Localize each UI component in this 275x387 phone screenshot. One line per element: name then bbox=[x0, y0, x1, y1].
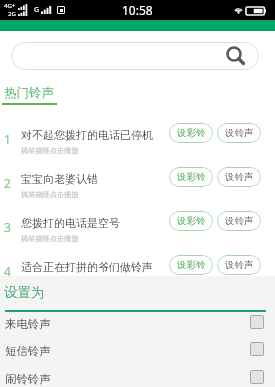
staticText: 搞笑搞怪点击播放 bbox=[21, 278, 79, 287]
staticText: 4G+ bbox=[4, 2, 16, 10]
button[interactable]: 设彩铃 bbox=[169, 255, 213, 275]
staticText: 适合正在打拼的爷们做铃声 bbox=[21, 260, 153, 274]
staticText: 热门铃声 bbox=[4, 85, 54, 101]
button[interactable]: 设铃声 bbox=[217, 211, 261, 231]
button[interactable]: 设铃声 bbox=[217, 167, 261, 187]
button[interactable]: 设彩铃 bbox=[169, 211, 213, 231]
staticText: 宝宝向老婆认错 bbox=[21, 172, 98, 186]
button[interactable]: 3 bbox=[0, 201, 275, 245]
staticText: G bbox=[34, 5, 40, 15]
button[interactable]: 设铃声 bbox=[217, 123, 261, 143]
button[interactable]: 2 bbox=[0, 157, 275, 201]
staticText: 设彩铃 bbox=[177, 127, 206, 139]
staticText: 设铃声 bbox=[225, 259, 254, 271]
staticText: 您拨打的电话是空号 bbox=[21, 216, 120, 230]
staticText: 对不起您拨打的电话已停机 bbox=[21, 128, 153, 142]
staticText: 设铃声 bbox=[225, 127, 254, 139]
staticText: 3 bbox=[4, 219, 11, 235]
button[interactable]: 设铃声 bbox=[217, 255, 261, 275]
staticText: 来电铃声 bbox=[5, 317, 51, 331]
button[interactable]: Search ringtones bbox=[11, 42, 259, 70]
staticText: 2G bbox=[8, 10, 16, 18]
button[interactable]: 闹铃铃声 bbox=[0, 365, 275, 387]
button[interactable]: 设彩铃 bbox=[169, 123, 213, 143]
staticText: 设置为 bbox=[4, 284, 45, 301]
staticText: 设彩铃 bbox=[177, 259, 206, 271]
staticText: 搞笑搞怪点击播放 bbox=[21, 190, 79, 199]
button[interactable]: 设彩铃 bbox=[169, 167, 213, 187]
staticText: 设铃声 bbox=[225, 171, 254, 183]
staticText: 1 bbox=[4, 131, 11, 147]
staticText: 4 bbox=[4, 263, 11, 279]
staticText: 搞笑搞怪点击播放 bbox=[21, 146, 79, 155]
button[interactable]: 4 bbox=[0, 245, 275, 289]
staticText: 10:58 bbox=[122, 2, 153, 18]
button[interactable]: 来电铃声 bbox=[0, 310, 275, 337]
staticText: 设彩铃 bbox=[177, 215, 206, 227]
staticText: 短信铃声 bbox=[5, 344, 51, 358]
staticText: 设彩铃 bbox=[177, 171, 206, 183]
staticText: 搞笑搞怪点击播放 bbox=[21, 234, 79, 243]
staticText: 2 bbox=[4, 175, 11, 191]
staticText: 闹铃铃声 bbox=[5, 372, 51, 386]
button[interactable]: 热门铃声 bbox=[4, 85, 54, 101]
button[interactable]: 短信铃声 bbox=[0, 337, 275, 364]
button[interactable]: 1 bbox=[0, 113, 275, 157]
staticText: 设铃声 bbox=[225, 215, 254, 227]
button[interactable]: 设置为 bbox=[4, 284, 45, 301]
